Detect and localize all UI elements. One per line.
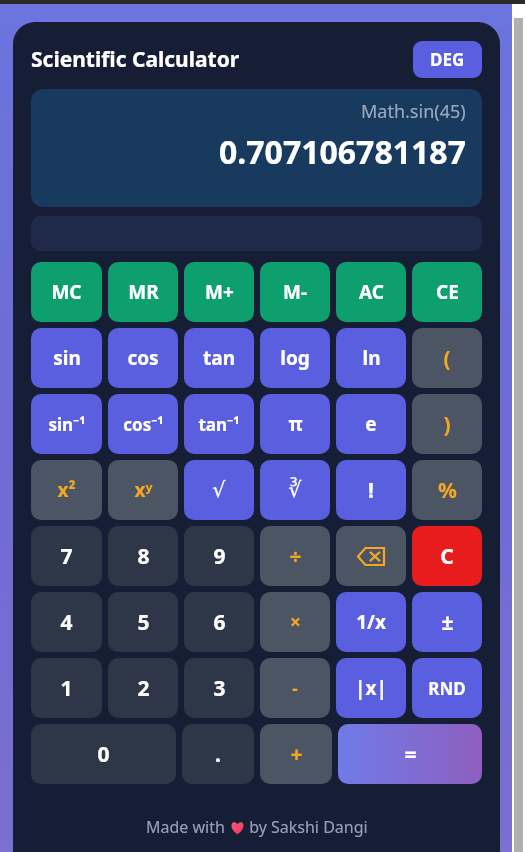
button[interactable]: 6 bbox=[184, 592, 254, 652]
staticText: e bbox=[365, 411, 377, 437]
staticText: ! bbox=[368, 476, 374, 505]
staticText: cos⁻¹ bbox=[123, 413, 164, 436]
staticText: 1/x bbox=[356, 609, 386, 635]
button[interactable]: e bbox=[336, 394, 406, 454]
staticText: CE bbox=[436, 279, 459, 305]
staticText: 3 bbox=[213, 674, 226, 703]
staticText: ln bbox=[362, 345, 381, 371]
staticText: . bbox=[215, 740, 221, 769]
staticText: x² bbox=[57, 477, 76, 503]
button[interactable]: 1/x bbox=[336, 592, 406, 652]
button[interactable]: cos bbox=[108, 328, 178, 388]
staticText: M- bbox=[283, 279, 307, 305]
staticText: 2 bbox=[137, 674, 150, 703]
staticText: ) bbox=[443, 410, 451, 439]
staticText: log bbox=[280, 345, 310, 371]
staticText: MR bbox=[128, 279, 159, 305]
staticText: 8 bbox=[137, 542, 150, 571]
button[interactable]: tan⁻¹ bbox=[184, 394, 254, 454]
button[interactable]: ) bbox=[412, 394, 482, 454]
staticText: 7 bbox=[60, 542, 73, 571]
button[interactable]: |x| bbox=[336, 658, 406, 718]
button[interactable]: 9 bbox=[184, 526, 254, 586]
staticText: ÷ bbox=[289, 542, 302, 571]
staticText: + bbox=[290, 740, 303, 769]
button[interactable]: ± bbox=[412, 592, 482, 652]
staticText: ± bbox=[441, 608, 454, 637]
button[interactable]: - bbox=[260, 658, 330, 718]
staticText: MC bbox=[51, 279, 82, 305]
button[interactable]: C bbox=[412, 526, 482, 586]
staticText: 5 bbox=[137, 608, 150, 637]
staticText: tan⁻¹ bbox=[198, 413, 240, 436]
button[interactable]: sin⁻¹ bbox=[31, 394, 102, 454]
button[interactable]: M+ bbox=[184, 262, 254, 322]
button[interactable]: 7 bbox=[31, 526, 102, 586]
button[interactable]: ÷ bbox=[260, 526, 330, 586]
button[interactable]: MC bbox=[31, 262, 102, 322]
staticText: by Sakshi Dangi bbox=[245, 816, 368, 838]
staticText: 0 bbox=[97, 740, 110, 769]
button[interactable]: = bbox=[338, 724, 482, 784]
button[interactable]: x² bbox=[31, 460, 102, 520]
button[interactable]: DEG bbox=[413, 41, 482, 78]
staticText: Scientific Calculator bbox=[31, 45, 240, 74]
staticText: ∛ bbox=[288, 478, 302, 502]
button[interactable]: . bbox=[182, 724, 254, 784]
staticText: sin⁻¹ bbox=[48, 413, 86, 436]
button[interactable]: log bbox=[260, 328, 330, 388]
button[interactable]: × bbox=[260, 592, 330, 652]
staticText: 6 bbox=[213, 608, 226, 637]
staticText: Made with bbox=[146, 816, 230, 838]
staticText: 1 bbox=[60, 674, 73, 703]
button[interactable]: AC bbox=[336, 262, 406, 322]
button[interactable]: π bbox=[260, 394, 330, 454]
button[interactable]: √ bbox=[184, 460, 254, 520]
button[interactable]: xʸ bbox=[108, 460, 178, 520]
staticText: √ bbox=[212, 478, 226, 502]
button[interactable]: M- bbox=[260, 262, 330, 322]
button[interactable]: ln bbox=[336, 328, 406, 388]
staticText: - bbox=[292, 677, 298, 700]
button[interactable]: tan bbox=[184, 328, 254, 388]
staticText: Math.sin(45) bbox=[361, 99, 466, 124]
button[interactable]: CE bbox=[412, 262, 482, 322]
staticText: M+ bbox=[205, 279, 234, 305]
staticText: ( bbox=[443, 344, 451, 373]
staticText: DEG bbox=[430, 48, 465, 71]
button[interactable]: 0 bbox=[31, 724, 176, 784]
staticText: = bbox=[404, 740, 417, 769]
staticText: sin bbox=[53, 345, 81, 371]
staticText: cos bbox=[127, 345, 159, 371]
button[interactable]: ! bbox=[336, 460, 406, 520]
button[interactable]: 8 bbox=[108, 526, 178, 586]
button[interactable]: 2 bbox=[108, 658, 178, 718]
staticText: tan bbox=[203, 345, 235, 371]
button[interactable]: MR bbox=[108, 262, 178, 322]
button[interactable]: 1 bbox=[31, 658, 102, 718]
button[interactable]: % bbox=[412, 460, 482, 520]
button[interactable]: 4 bbox=[31, 592, 102, 652]
button[interactable]: sin bbox=[31, 328, 102, 388]
button[interactable]: Backspace bbox=[336, 526, 406, 586]
staticText: 4 bbox=[60, 608, 73, 637]
staticText: RND bbox=[428, 677, 466, 700]
button[interactable]: RND bbox=[412, 658, 482, 718]
staticText: 9 bbox=[213, 542, 226, 571]
button[interactable]: 5 bbox=[108, 592, 178, 652]
staticText: % bbox=[438, 476, 457, 505]
button[interactable]: ∛ bbox=[260, 460, 330, 520]
button[interactable]: ( bbox=[412, 328, 482, 388]
staticText: × bbox=[290, 609, 301, 635]
staticText: C bbox=[440, 542, 454, 571]
staticText: xʸ bbox=[134, 477, 153, 503]
button[interactable]: 3 bbox=[184, 658, 254, 718]
staticText: 0.707106781187 bbox=[219, 130, 466, 174]
staticText: π bbox=[288, 411, 303, 437]
button[interactable]: + bbox=[260, 724, 332, 784]
staticText: |x| bbox=[355, 675, 387, 701]
staticText: AC bbox=[359, 279, 384, 305]
button[interactable]: cos⁻¹ bbox=[108, 394, 178, 454]
